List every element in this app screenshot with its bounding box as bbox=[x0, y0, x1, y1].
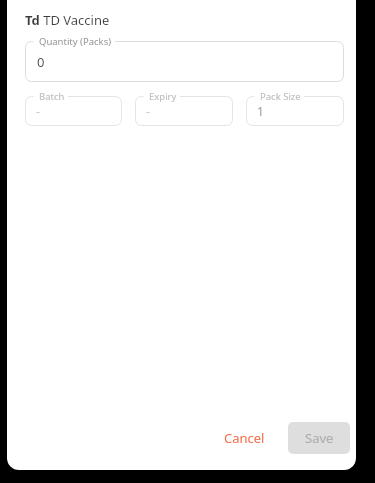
staticText: 1 bbox=[257, 103, 264, 119]
staticText: - bbox=[36, 103, 40, 119]
staticText: Expiry bbox=[149, 90, 177, 103]
button[interactable]: Pack Size bbox=[246, 96, 344, 126]
staticText: Quantity (Packs) bbox=[39, 35, 112, 48]
button[interactable]: Quantity (Packs) bbox=[25, 41, 344, 82]
button[interactable]: Batch bbox=[25, 96, 122, 126]
button[interactable]: Expiry bbox=[135, 96, 233, 126]
button[interactable]: Cancel bbox=[212, 421, 277, 455]
staticText: Cancel bbox=[224, 429, 265, 447]
staticText: Pack Size bbox=[260, 90, 301, 103]
staticText: Td TD Vaccine bbox=[25, 11, 110, 29]
staticText: Save bbox=[305, 429, 334, 447]
staticText: 0 bbox=[37, 53, 45, 71]
staticText: Batch bbox=[39, 90, 65, 103]
button[interactable]: Save bbox=[288, 422, 350, 454]
staticText: - bbox=[146, 103, 150, 119]
